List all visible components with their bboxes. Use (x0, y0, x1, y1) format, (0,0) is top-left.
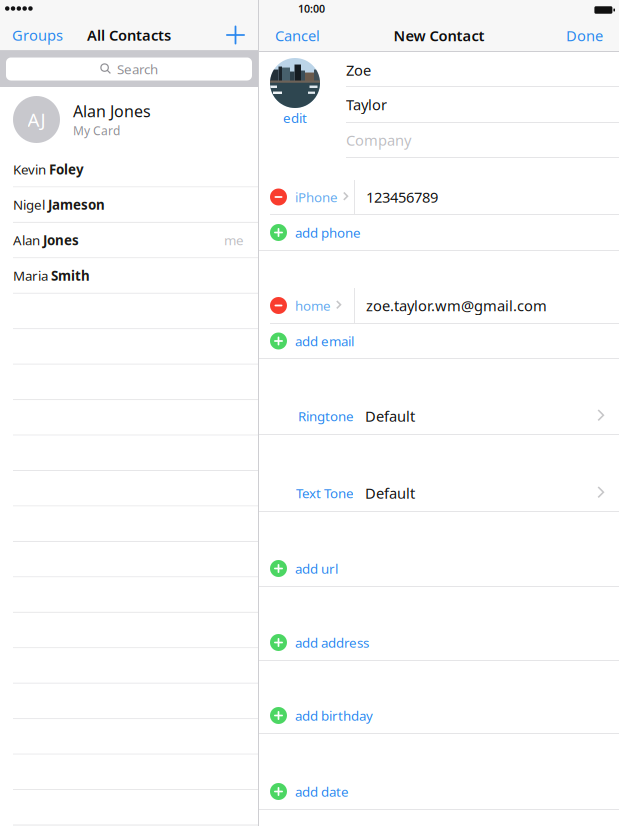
button[interactable]: Nigel Jameson (0, 187, 258, 223)
staticText: iPhone (295, 188, 338, 206)
staticText: home (295, 297, 331, 314)
staticText: Default (365, 406, 415, 426)
staticText: Nigel Jameson (13, 196, 105, 213)
staticText: New Contact (393, 26, 484, 45)
staticText: edit (283, 109, 307, 127)
staticText: AJ (27, 107, 45, 132)
staticText: Text Tone (296, 484, 354, 502)
button[interactable]: Cancel (259, 20, 328, 50)
button[interactable]: add email (259, 324, 619, 359)
button[interactable]: Maria Smith (0, 258, 258, 294)
staticText: Cancel (275, 26, 320, 45)
button[interactable]: add url (259, 551, 619, 587)
button[interactable]: Done (558, 20, 619, 50)
staticText: me (224, 231, 244, 249)
staticText: Taylor (346, 95, 387, 114)
button[interactable]: Ringtone (259, 359, 619, 435)
button[interactable]: Add contact (216, 20, 258, 50)
staticText: Default (365, 483, 415, 503)
button[interactable]: zoe.taylor.wm@gmail.com (259, 288, 619, 324)
staticText: add email (295, 332, 354, 350)
staticText: add date (295, 783, 349, 800)
staticText: Alan Jones (13, 231, 79, 249)
staticText: add birthday (295, 707, 373, 724)
staticText: Kevin Foley (13, 160, 84, 178)
staticText: All Contacts (87, 25, 171, 45)
staticText: My Card (73, 123, 120, 139)
staticText: add url (295, 560, 338, 577)
button[interactable]: AJ (0, 87, 258, 152)
staticText: 123456789 (366, 187, 438, 207)
button[interactable]: Text Tone (259, 435, 619, 512)
button[interactable]: 123456789 (259, 180, 619, 215)
staticText: Maria Smith (13, 267, 90, 284)
staticText: Ringtone (298, 407, 354, 425)
button[interactable]: add phone (259, 215, 619, 251)
button[interactable]: Groups (0, 20, 71, 50)
button[interactable]: add birthday (259, 698, 619, 734)
staticText: Done (566, 26, 603, 45)
staticText: Zoe (346, 60, 371, 80)
staticText: Alan Jones (73, 100, 151, 122)
button[interactable]: add date (259, 774, 619, 810)
button[interactable]: edit (283, 109, 307, 127)
staticText: 10:00 (298, 1, 325, 16)
staticText: Search (117, 60, 158, 78)
button[interactable]: Alan Jones (0, 223, 258, 258)
button[interactable]: add address (259, 625, 619, 661)
button[interactable]: Kevin Foley (0, 152, 258, 187)
staticText: add address (295, 634, 369, 651)
staticText: zoe.taylor.wm@gmail.com (366, 296, 547, 315)
staticText: add phone (295, 224, 361, 241)
staticText: Company (346, 130, 411, 150)
staticText: Groups (12, 25, 63, 45)
